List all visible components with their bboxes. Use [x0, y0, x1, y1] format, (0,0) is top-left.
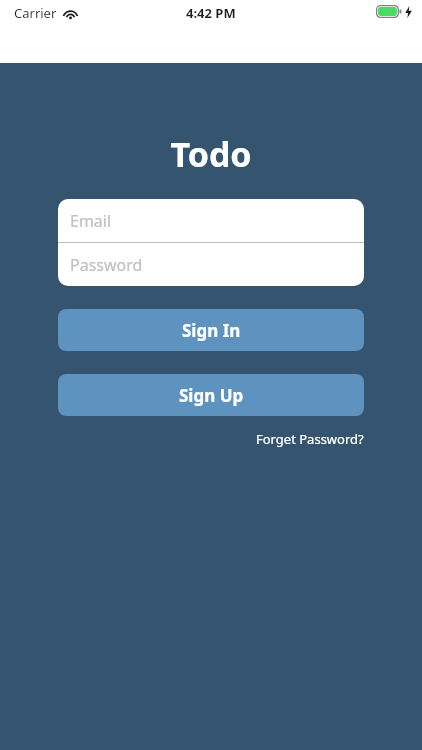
staticText: Sign In: [182, 319, 241, 342]
staticText: Forget Password?: [256, 430, 364, 448]
button[interactable]: Sign Up: [58, 374, 364, 416]
staticText: Carrier: [14, 4, 57, 22]
button[interactable]: Password: [58, 243, 364, 286]
staticText: 4:42 PM: [186, 4, 236, 22]
button[interactable]: Email: [58, 199, 364, 242]
button[interactable]: Sign In: [58, 309, 364, 351]
staticText: Password: [70, 254, 143, 276]
staticText: Email: [70, 210, 112, 232]
staticText: Todo: [58, 131, 364, 177]
button[interactable]: Forget Password?: [58, 426, 364, 452]
staticText: Sign Up: [179, 384, 244, 407]
